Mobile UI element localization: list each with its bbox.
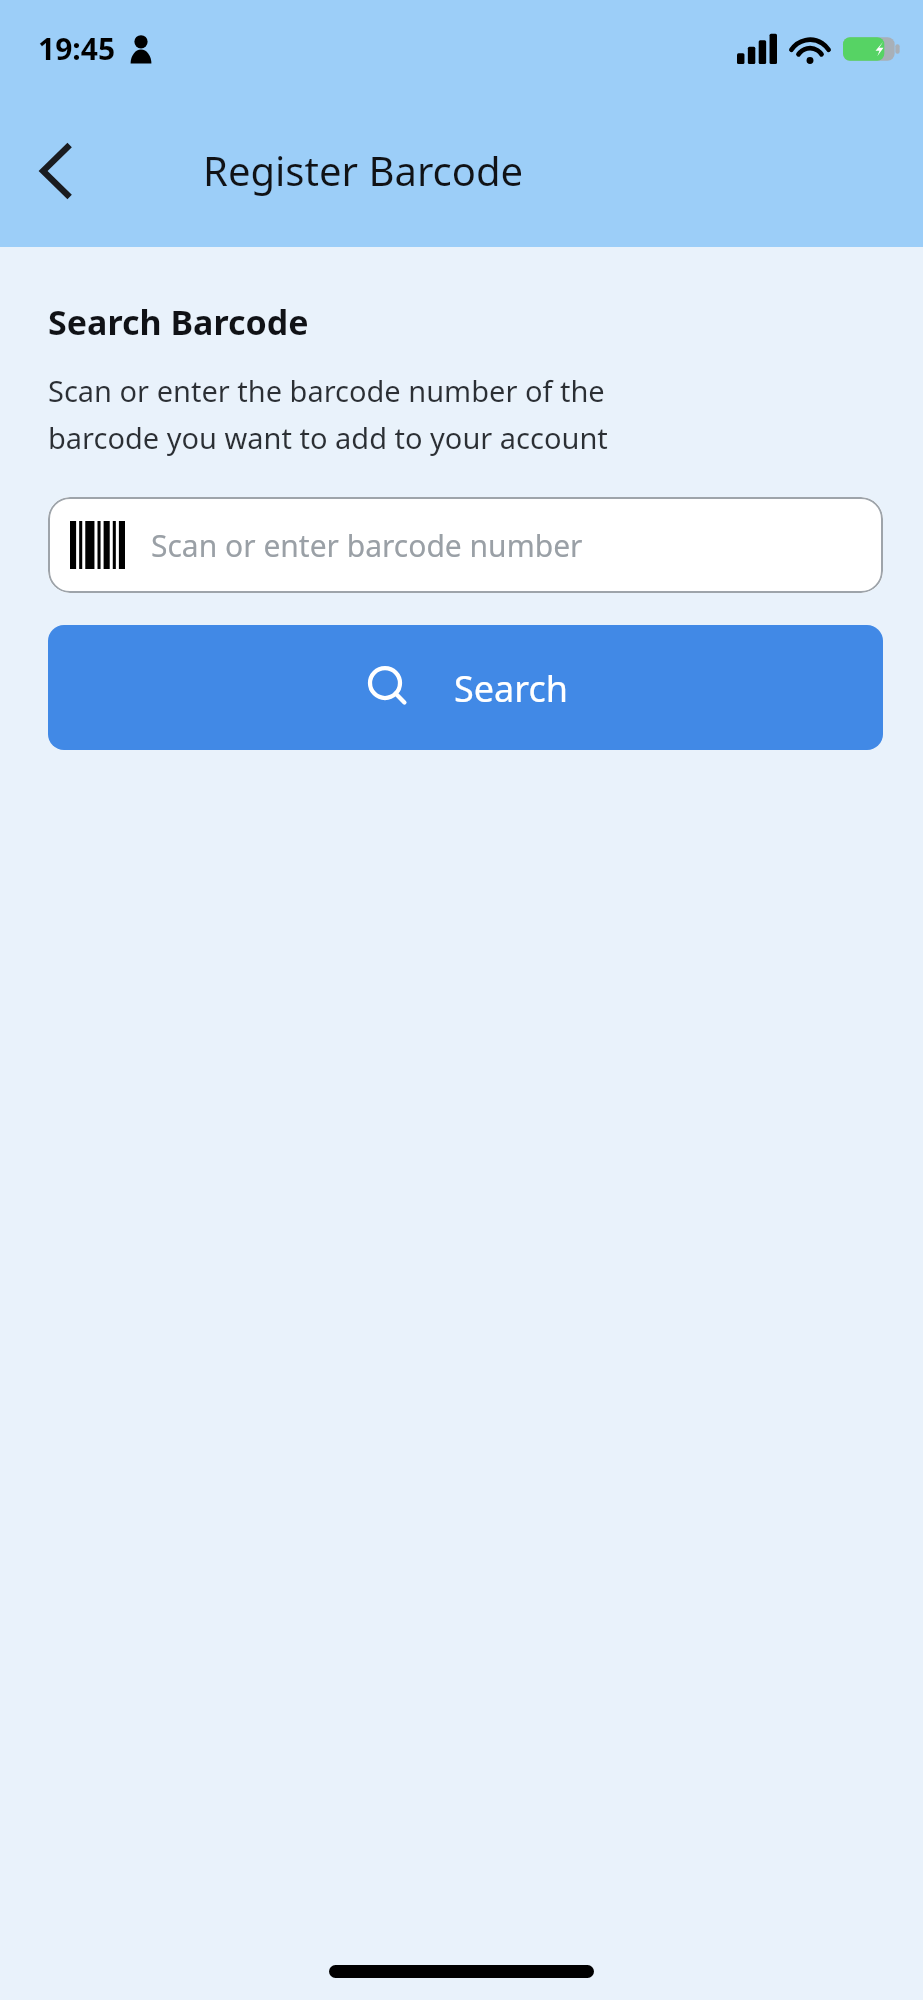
button[interactable]: Back xyxy=(14,129,98,213)
staticText: Scan or enter the barcode number of the xyxy=(48,371,605,410)
staticText: Search xyxy=(454,664,568,713)
staticText: barcode you want to add to your account xyxy=(48,418,608,457)
button[interactable]: Search xyxy=(48,625,883,750)
staticText: Scan or enter barcode number xyxy=(151,525,583,566)
staticText: 19:45 xyxy=(38,28,116,69)
button[interactable]: Scan or enter barcode number xyxy=(48,497,883,593)
staticText: Search Barcode xyxy=(48,299,309,345)
staticText: Register Barcode xyxy=(203,143,524,197)
